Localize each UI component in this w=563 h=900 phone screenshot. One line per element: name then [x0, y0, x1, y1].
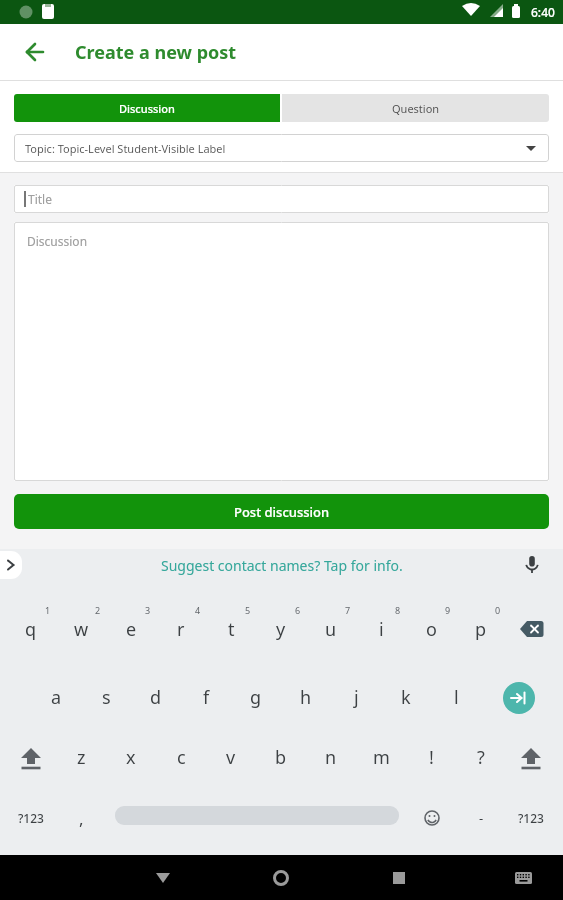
button[interactable]	[139, 855, 187, 900]
button[interactable]: Topic: Topic-Level Student-Visible Label	[14, 134, 549, 162]
button[interactable]: Discussion	[14, 222, 549, 481]
staticText: Create a new post	[75, 40, 237, 65]
staticText: q	[25, 617, 37, 642]
button[interactable]	[375, 855, 423, 900]
staticText: p	[475, 617, 487, 642]
staticText: Suggest contact names? Tap for info.	[161, 556, 403, 575]
button[interactable]: i	[356, 609, 406, 649]
staticText: d	[150, 685, 162, 710]
button[interactable]: l	[431, 677, 481, 717]
button[interactable]: f	[181, 677, 231, 717]
staticText: Discussion	[119, 101, 175, 116]
button[interactable]: o	[406, 609, 456, 649]
staticText: f	[203, 685, 210, 710]
staticText: u	[325, 617, 337, 642]
button[interactable]: m	[356, 737, 406, 777]
button[interactable]: ?123	[6, 798, 56, 838]
button[interactable]: Discussion	[14, 94, 280, 122]
button[interactable]: n	[306, 737, 356, 777]
staticText: j	[354, 685, 359, 710]
staticText: 7	[345, 604, 351, 616]
staticText: s	[102, 685, 111, 710]
button[interactable]: c	[156, 737, 206, 777]
staticText: Discussion	[27, 233, 88, 249]
staticText: 3	[145, 604, 151, 616]
button[interactable]: p	[456, 609, 506, 649]
button[interactable]: k	[381, 677, 431, 717]
staticText: Post discussion	[234, 503, 330, 521]
staticText: Question	[392, 101, 440, 116]
staticText: 9	[445, 604, 451, 616]
button[interactable]: -	[456, 798, 506, 838]
button[interactable]: w	[56, 609, 106, 649]
staticText: r	[177, 617, 185, 642]
staticText: l	[454, 685, 459, 710]
button[interactable]	[0, 551, 22, 579]
button[interactable]: Post discussion	[14, 494, 549, 529]
staticText: i	[379, 617, 384, 642]
button[interactable]	[503, 682, 535, 714]
staticText: b	[275, 745, 287, 770]
button[interactable]: ?123	[506, 798, 556, 838]
button[interactable]: d	[131, 677, 181, 717]
staticText: -	[479, 809, 484, 827]
staticText: o	[426, 617, 437, 642]
staticText: 0	[495, 604, 501, 616]
button[interactable]: a	[31, 677, 81, 717]
staticText: e	[126, 617, 137, 642]
staticText: v	[226, 745, 236, 770]
staticText: Title	[28, 191, 52, 207]
staticText: 1	[45, 604, 51, 616]
button[interactable]: r	[156, 609, 206, 649]
staticText: w	[74, 617, 89, 642]
button[interactable]: e	[106, 609, 156, 649]
button[interactable]: j	[331, 677, 381, 717]
button[interactable]: Question	[282, 94, 549, 122]
button[interactable]: ?	[456, 737, 506, 777]
button[interactable]: h	[281, 677, 331, 717]
staticText: g	[250, 685, 262, 710]
staticText: ?123	[518, 810, 544, 826]
button[interactable]: s	[81, 677, 131, 717]
staticText: 6	[295, 604, 301, 616]
button[interactable]: z	[56, 737, 106, 777]
staticText: h	[300, 685, 312, 710]
staticText: k	[401, 685, 411, 710]
staticText: z	[77, 745, 86, 770]
button[interactable]	[499, 855, 547, 900]
staticText: ,	[79, 807, 84, 830]
staticText: Topic: Topic-Level Student-Visible Label	[25, 141, 226, 156]
button[interactable]	[11, 28, 59, 76]
button[interactable]: !	[406, 737, 456, 777]
staticText: !	[429, 745, 434, 770]
staticText: t	[228, 617, 235, 642]
button[interactable]: u	[306, 609, 356, 649]
button[interactable]: v	[206, 737, 256, 777]
staticText: c	[177, 745, 186, 770]
staticText: n	[325, 745, 337, 770]
staticText: ?123	[18, 810, 44, 826]
staticText: 8	[395, 604, 401, 616]
staticText: m	[373, 745, 390, 770]
staticText: 2	[95, 604, 101, 616]
staticText: a	[51, 685, 62, 710]
button[interactable]: y	[256, 609, 306, 649]
button[interactable]: t	[206, 609, 256, 649]
staticText: ?	[477, 745, 485, 770]
button[interactable]: x	[106, 737, 156, 777]
button[interactable]: ,	[56, 798, 106, 838]
button[interactable]: Title	[14, 185, 549, 213]
button[interactable]: b	[256, 737, 306, 777]
staticText: y	[276, 617, 286, 642]
staticText: x	[126, 745, 136, 770]
button[interactable]: g	[231, 677, 281, 717]
staticText: 6:40	[531, 4, 555, 20]
staticText: 5	[245, 604, 251, 616]
staticText: 4	[195, 604, 201, 616]
button[interactable]: q	[6, 609, 56, 649]
button[interactable]	[257, 855, 305, 900]
